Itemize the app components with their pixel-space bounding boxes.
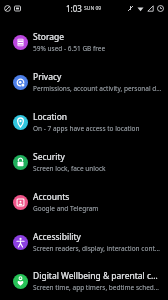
button[interactable]: Privacy [0,62,168,102]
staticText: Accounts [33,191,70,203]
staticText: Accessibility [33,231,81,243]
button[interactable]: Accounts [0,182,168,222]
staticText: Screen time, app timers, bedtime schedul… [33,283,162,292]
staticText: Location [33,111,68,123]
button[interactable]: Accessibility [0,222,168,262]
staticText: Storage [33,31,65,43]
staticText: 1:03 [66,3,82,14]
staticText: SUN 09 [84,5,102,12]
staticText: Security [33,151,65,163]
staticText: Screen readers, display, interaction con… [33,244,162,253]
button[interactable]: Security [0,142,168,182]
staticText: On - 7 apps have access to location [33,124,140,133]
staticText: Digital Wellbeing & parental controls [33,270,162,282]
button[interactable]: Storage [0,22,168,62]
staticText: Privacy [33,71,62,83]
staticText: Google and Telegram [33,204,99,213]
button[interactable]: Digital Wellbeing & parental controls [0,262,168,300]
button[interactable]: Location [0,102,168,142]
staticText: 59% used - 6.51 GB free [33,44,106,53]
staticText: Screen lock, face unlock [33,164,106,173]
staticText: Permissions, account activity, personal … [33,84,162,93]
